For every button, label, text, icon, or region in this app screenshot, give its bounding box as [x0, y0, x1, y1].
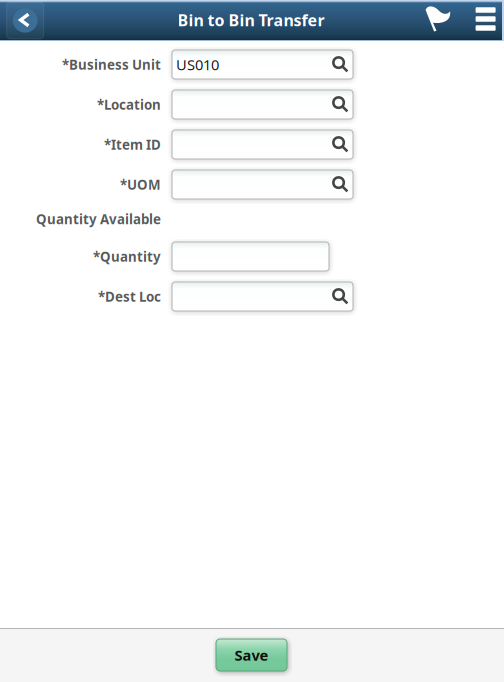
staticText: *Business Unit — [62, 56, 161, 73]
button[interactable] — [172, 90, 353, 119]
button[interactable]: US010 — [172, 50, 353, 79]
staticText: Bin to Bin Transfer — [177, 9, 324, 31]
staticText: *Location — [97, 96, 161, 113]
button[interactable]: Flag — [421, 1, 455, 39]
staticText: Save — [234, 645, 268, 665]
staticText: *Quantity — [93, 248, 161, 265]
staticText: Quantity Available — [36, 210, 161, 228]
staticText: *UOM — [120, 176, 161, 193]
button[interactable]: Save — [216, 639, 287, 671]
staticText: US010 — [176, 55, 219, 74]
button[interactable]: Back — [7, 2, 44, 39]
button[interactable] — [172, 242, 329, 271]
button[interactable] — [172, 282, 353, 311]
staticText: *Item ID — [104, 136, 161, 153]
button[interactable] — [172, 170, 353, 199]
button[interactable] — [172, 130, 353, 159]
staticText: *Dest Loc — [98, 288, 161, 305]
button[interactable]: Menu — [469, 0, 503, 38]
